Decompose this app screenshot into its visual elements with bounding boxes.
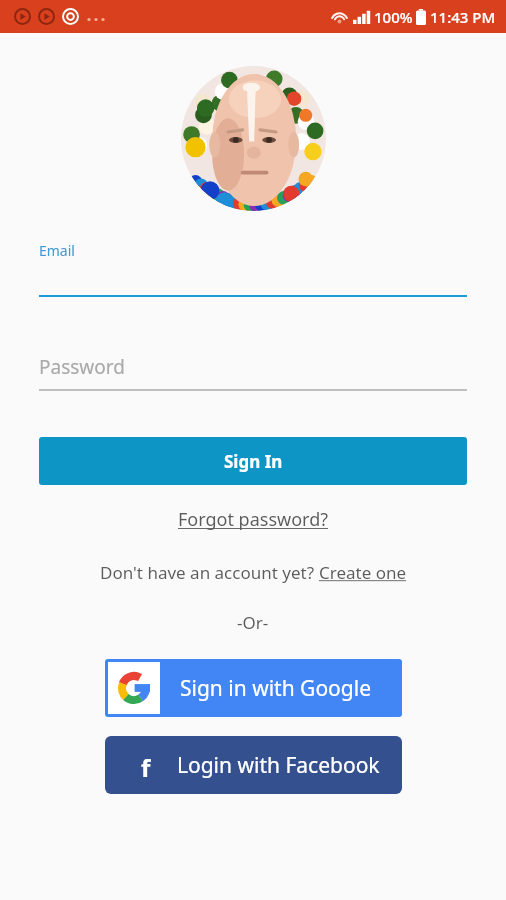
button[interactable]: Create one xyxy=(319,561,407,584)
staticText: Email xyxy=(39,241,75,260)
button[interactable]: Forgot password? xyxy=(168,502,339,537)
staticText: f xyxy=(141,751,151,779)
staticText: Forgot password? xyxy=(178,507,329,532)
staticText: Login with Facebook xyxy=(177,751,380,780)
staticText: 100% xyxy=(374,7,413,27)
staticText: -Or- xyxy=(237,611,269,634)
staticText: Create one xyxy=(319,561,407,584)
staticText: 11:43 PM xyxy=(430,7,496,27)
staticText: Sign in with Google xyxy=(180,674,371,703)
staticText: Sign In xyxy=(224,450,283,473)
button[interactable]: Sign in with Google xyxy=(105,659,402,717)
staticText: Password xyxy=(39,354,125,380)
button[interactable]: f xyxy=(105,736,402,794)
staticText: Don't have an account yet? xyxy=(100,561,319,584)
button[interactable]: Sign In xyxy=(39,437,467,485)
